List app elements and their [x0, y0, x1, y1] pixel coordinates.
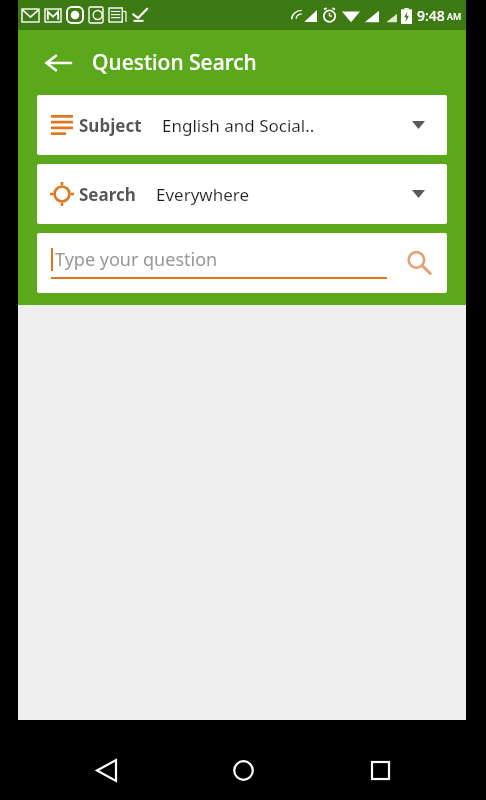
staticText: AM — [447, 10, 462, 22]
button[interactable]: Search — [397, 241, 441, 285]
button[interactable]: Search — [37, 164, 447, 224]
button[interactable]: Recent apps — [357, 747, 403, 793]
button[interactable]: Type your question — [37, 233, 447, 293]
staticText: Search — [79, 183, 136, 206]
staticText: Subject — [79, 114, 142, 137]
button[interactable]: Home — [220, 747, 266, 793]
staticText: English and Social.. — [162, 114, 315, 137]
button[interactable]: Back — [36, 41, 80, 85]
staticText: Type your question — [55, 247, 218, 272]
staticText: Question Search — [92, 48, 257, 77]
staticText: Everywhere — [156, 183, 250, 206]
staticText: 9:48 — [417, 6, 445, 25]
button[interactable]: Back — [83, 747, 129, 793]
button[interactable]: Subject — [37, 95, 447, 155]
